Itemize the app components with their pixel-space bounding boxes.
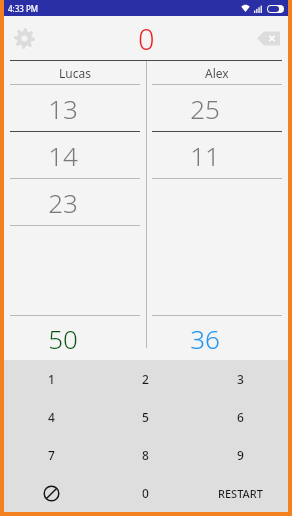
staticText: 2 [142,371,149,387]
button[interactable]: Backspace [250,20,286,56]
button[interactable]: Settings [6,20,42,56]
button[interactable]: 36 [152,316,282,360]
button[interactable]: Alex [152,61,282,84]
button[interactable]: 7 [4,436,98,474]
button[interactable]: 5 [98,398,193,436]
button[interactable]: 1 [4,360,98,398]
staticText: 8 [142,447,149,463]
staticText: 1 [48,371,55,387]
button[interactable]: 6 [193,398,288,436]
button[interactable]: 8 [98,436,193,474]
staticText: 50 [10,321,116,356]
staticText: Lucas [59,65,91,81]
button[interactable]: 50 [10,316,140,360]
staticText: 0 [138,19,155,58]
button[interactable]: 25 [152,85,282,131]
button[interactable]: 9 [193,436,288,474]
button[interactable]: 13 [10,85,140,131]
staticText: Alex [205,65,229,81]
staticText: 11 [152,138,258,173]
staticText: RESTART [218,486,263,501]
button[interactable]: 3 [193,360,288,398]
button[interactable]: 23 [10,179,140,225]
staticText: 4 [48,409,55,425]
staticText: 13 [10,91,116,126]
staticText: 0 [142,485,149,501]
staticText: 3 [237,371,244,387]
button[interactable]: RESTART [193,474,288,512]
staticText: 36 [152,321,258,356]
button[interactable]: Lucas [10,61,140,84]
button[interactable]: 14 [10,132,140,178]
button[interactable]: 2 [98,360,193,398]
button[interactable]: 4 [4,398,98,436]
staticText: 5 [142,409,149,425]
staticText: 6 [237,409,244,425]
staticText: 25 [152,91,258,126]
staticText: 7 [48,447,55,463]
button[interactable]: Cancel entry [4,474,98,512]
staticText: 9 [237,447,244,463]
button[interactable]: 0 [98,474,193,512]
staticText: 23 [10,185,116,220]
staticText: 14 [10,138,116,173]
button[interactable]: 11 [152,132,282,178]
staticText: 4:33 PM [8,3,39,14]
